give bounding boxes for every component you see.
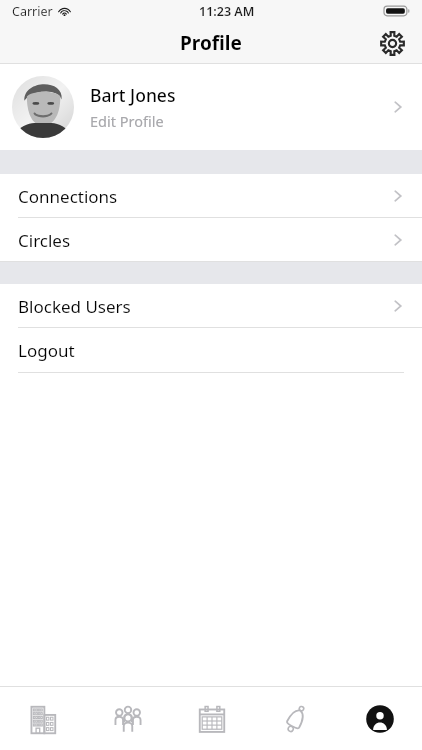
staticText: Circles	[18, 229, 71, 252]
button[interactable]: Blocked Users	[0, 284, 422, 328]
button[interactable]: Notifications	[254, 687, 338, 750]
staticText: Logout	[18, 339, 75, 362]
button[interactable]: Bart Jones	[0, 64, 422, 150]
button[interactable]: People	[85, 687, 170, 750]
staticText: Carrier	[12, 3, 53, 20]
button[interactable]: Logout	[0, 328, 422, 373]
staticText: 11:23 AM	[199, 3, 255, 20]
staticText: Blocked Users	[18, 295, 131, 318]
button[interactable]: Settings	[374, 25, 410, 61]
staticText: Bart Jones	[90, 83, 176, 107]
button[interactable]: Calendar	[170, 687, 254, 750]
button[interactable]: Profile	[338, 687, 422, 750]
staticText: Edit Profile	[90, 111, 164, 131]
staticText: Connections	[18, 185, 118, 208]
button[interactable]: Circles	[0, 218, 422, 262]
button[interactable]: Connections	[0, 174, 422, 218]
staticText: Profile	[180, 30, 242, 56]
button[interactable]: Company	[0, 687, 85, 750]
